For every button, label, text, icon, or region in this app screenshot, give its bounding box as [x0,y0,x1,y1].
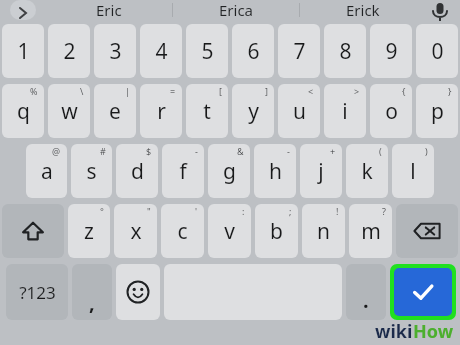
staticText: \ [80,85,84,97]
staticText: " [147,205,151,217]
staticText: ( [379,145,382,157]
button[interactable]: d [116,144,158,198]
staticText: b [270,217,283,246]
staticText: x [130,217,142,246]
button[interactable]: 6 [232,24,274,78]
button[interactable]: Voice input [428,0,452,20]
button[interactable]: Erica [173,0,299,20]
button[interactable]: Erick [300,0,426,20]
button[interactable]: x [114,204,157,258]
button[interactable]: 1 [2,24,44,78]
button[interactable]: Enter [394,268,452,316]
staticText: s [86,157,97,186]
button[interactable]: 2 [48,24,90,78]
button[interactable]: f [162,144,204,198]
button[interactable]: 4 [140,24,182,78]
button[interactable]: l [392,144,434,198]
staticText: ! [336,205,339,217]
staticText: ' [195,205,198,217]
button[interactable]: c [161,204,204,258]
staticText: $ [146,145,152,157]
staticText: ) [425,145,428,157]
button[interactable]: 5 [186,24,228,78]
staticText: , [89,289,95,316]
button[interactable]: 7 [278,24,320,78]
button[interactable]: e [94,84,136,138]
staticText: & [237,145,244,157]
button[interactable]: . [346,264,386,320]
staticText: m [361,217,381,246]
staticText: u [293,97,306,126]
button[interactable]: k [346,144,388,198]
staticText: g [223,157,236,186]
staticText: 7 [293,37,306,66]
staticText: o [385,97,398,126]
staticText: - [195,145,198,157]
button[interactable]: Backspace [396,204,458,258]
button[interactable]: s [71,144,112,198]
staticText: ?123 [19,281,56,304]
button[interactable]: 0 [416,24,458,78]
button[interactable]: o [370,84,412,138]
button[interactable]: Eric [46,0,172,20]
staticText: 8 [339,37,352,66]
button[interactable]: h [254,144,296,198]
button[interactable]: ?123 [6,264,68,320]
staticText: # [100,145,106,157]
staticText: . [363,287,369,314]
staticText: f [179,157,187,186]
staticText: + [330,145,336,157]
staticText: a [41,157,53,186]
button[interactable]: 9 [370,24,412,78]
staticText: How [413,319,454,344]
staticText: : [242,205,245,217]
staticText: 2 [63,37,76,66]
staticText: < [308,85,314,97]
staticText: - [287,145,290,157]
staticText: 1 [17,37,30,66]
button[interactable]: v [208,204,251,258]
button[interactable]: i [324,84,366,138]
button[interactable]: m [349,204,392,258]
staticText: r [157,97,166,126]
staticText: p [431,97,444,126]
staticText: 6 [247,37,260,66]
staticText: j [318,157,324,186]
button[interactable]: 8 [324,24,366,78]
button[interactable]: b [255,204,298,258]
button[interactable]: t [186,84,228,138]
staticText: ° [100,205,104,217]
button[interactable]: Emoji [116,264,160,320]
button[interactable]: , [72,264,112,320]
staticText: d [131,157,144,186]
staticText: n [317,217,330,246]
staticText: wiki [375,319,413,344]
button[interactable]: j [300,144,342,198]
button[interactable]: a [26,144,67,198]
staticText: ? [382,205,386,217]
button[interactable]: g [208,144,250,198]
button[interactable]: More suggestions [10,0,36,20]
button[interactable]: z [68,204,110,258]
staticText: e [109,97,121,126]
staticText: } [448,85,452,97]
staticText: v [224,217,235,246]
button[interactable]: r [140,84,182,138]
button[interactable]: u [278,84,320,138]
staticText: > [354,85,360,97]
button[interactable]: y [232,84,274,138]
staticText: ] [265,85,268,97]
staticText: = [170,85,176,97]
staticText: 0 [431,37,444,66]
staticText: z [84,217,94,246]
button[interactable]: 3 [94,24,136,78]
staticText: 9 [385,37,398,66]
button[interactable]: w [48,84,90,138]
staticText: | [125,85,130,97]
button[interactable]: Shift [2,204,64,258]
staticText: 3 [109,37,122,66]
button[interactable]: n [302,204,345,258]
button[interactable]: q [2,84,44,138]
button[interactable]: p [416,84,458,138]
